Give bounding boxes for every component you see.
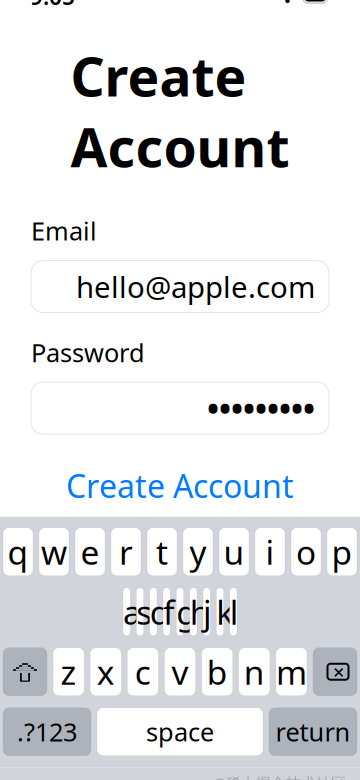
button[interactable]: v bbox=[164, 648, 195, 696]
staticText: f bbox=[163, 590, 170, 634]
staticText: i bbox=[265, 530, 274, 574]
staticText: .?123 bbox=[17, 715, 77, 748]
button[interactable]: p bbox=[327, 528, 357, 576]
button[interactable]: q bbox=[3, 528, 33, 576]
button[interactable]: o bbox=[291, 528, 321, 576]
staticText: d bbox=[150, 590, 157, 634]
button[interactable]: Create Account bbox=[31, 454, 329, 517]
button[interactable]: u bbox=[219, 528, 249, 576]
staticText: Email bbox=[31, 214, 97, 247]
staticText: × bbox=[333, 658, 344, 685]
staticText: j bbox=[203, 590, 210, 634]
button[interactable]: e bbox=[75, 528, 105, 576]
staticText: space bbox=[146, 715, 214, 748]
button[interactable]: a bbox=[123, 588, 130, 636]
staticText: x bbox=[97, 650, 115, 694]
staticText: h bbox=[190, 590, 197, 634]
staticText: @稀土掘金技术社区 bbox=[213, 773, 346, 780]
button[interactable]: return bbox=[269, 708, 357, 756]
button[interactable]: hello@apple.com bbox=[31, 261, 329, 313]
staticText: c bbox=[135, 650, 151, 694]
staticText: n bbox=[244, 650, 265, 694]
staticText: r bbox=[119, 530, 133, 574]
button[interactable]: l bbox=[230, 588, 237, 636]
button[interactable]: c bbox=[127, 648, 158, 696]
staticText: g bbox=[176, 590, 184, 634]
staticText: y bbox=[189, 530, 206, 574]
staticText: t bbox=[156, 530, 168, 574]
staticText: q bbox=[7, 530, 28, 574]
staticText: return bbox=[275, 715, 350, 748]
button[interactable]: z bbox=[53, 648, 84, 696]
button[interactable]: j bbox=[203, 588, 210, 636]
button[interactable]: Delete bbox=[313, 648, 357, 696]
button[interactable]: r bbox=[111, 528, 141, 576]
staticText: z bbox=[61, 650, 77, 694]
staticText: b bbox=[207, 650, 228, 694]
button[interactable]: .?123 bbox=[3, 708, 91, 756]
button[interactable]: w bbox=[39, 528, 69, 576]
staticText: Password bbox=[31, 336, 145, 369]
button[interactable]: Shift bbox=[3, 648, 47, 696]
button[interactable]: t bbox=[147, 528, 177, 576]
button[interactable]: x bbox=[90, 648, 121, 696]
button[interactable]: d bbox=[150, 588, 157, 636]
button[interactable]: space bbox=[97, 708, 263, 756]
button[interactable]: i bbox=[255, 528, 285, 576]
button[interactable]: k bbox=[216, 588, 224, 636]
button[interactable]: m bbox=[276, 648, 307, 696]
staticText: e bbox=[80, 530, 99, 574]
staticText: w bbox=[41, 530, 67, 574]
staticText: m bbox=[276, 650, 307, 694]
staticText: k bbox=[216, 590, 224, 634]
staticText: p bbox=[331, 530, 352, 574]
button[interactable]: f bbox=[163, 588, 170, 636]
staticText: l bbox=[230, 590, 237, 634]
staticText: s bbox=[136, 590, 144, 634]
button[interactable]: b bbox=[202, 648, 233, 696]
staticText: 9:05 bbox=[30, 0, 75, 11]
staticText: Create Account bbox=[66, 464, 294, 507]
button[interactable]: s bbox=[136, 588, 144, 636]
staticText: u bbox=[223, 530, 244, 574]
button[interactable]: y bbox=[183, 528, 213, 576]
button[interactable]: ••••••••• bbox=[31, 382, 329, 434]
staticText: hello@apple.com bbox=[76, 267, 315, 306]
staticText: a bbox=[123, 590, 130, 634]
staticText: ••••••••• bbox=[207, 387, 315, 429]
staticText: Create Account bbox=[70, 40, 289, 182]
button[interactable]: h bbox=[190, 588, 197, 636]
button[interactable]: g bbox=[176, 588, 184, 636]
button[interactable]: n bbox=[239, 648, 270, 696]
staticText: o bbox=[296, 530, 316, 574]
staticText: v bbox=[171, 650, 188, 694]
